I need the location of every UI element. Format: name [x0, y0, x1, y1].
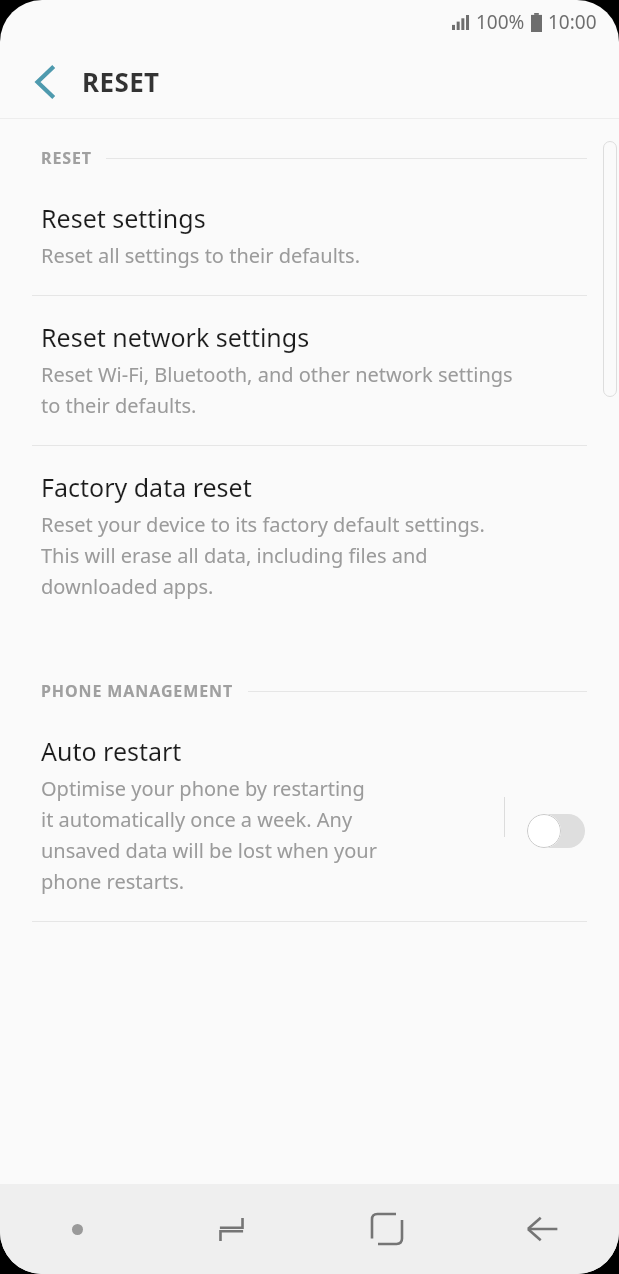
staticText: 10:00 — [548, 9, 597, 35]
button[interactable]: Home — [309, 1184, 464, 1274]
button[interactable]: Auto restart toggle — [527, 809, 591, 853]
staticText: Reset Wi-Fi, Bluetooth, and other networ… — [41, 361, 513, 388]
button[interactable]: Back — [464, 1184, 619, 1274]
staticText: PHONE MANAGEMENT — [41, 680, 234, 702]
button[interactable]: Reset settings — [0, 177, 619, 295]
button[interactable]: Auto restart — [0, 710, 619, 921]
staticText: Auto restart — [41, 734, 182, 768]
staticText: This will erase all data, including file… — [41, 542, 428, 569]
staticText: RESET — [41, 147, 92, 169]
staticText: Reset settings — [41, 201, 206, 235]
staticText: to their defaults. — [41, 392, 197, 419]
staticText: Optimise your phone by restarting — [41, 775, 365, 802]
staticText: Reset network settings — [41, 320, 310, 354]
staticText: unsaved data will be lost when your — [41, 837, 377, 864]
staticText: phone restarts. — [41, 868, 185, 895]
staticText: Factory data reset — [41, 470, 252, 504]
button[interactable]: Factory data reset — [0, 446, 619, 626]
staticText: downloaded apps. — [41, 573, 214, 600]
staticText: Reset all settings to their defaults. — [41, 242, 360, 269]
button[interactable]: Back — [18, 55, 72, 109]
button[interactable]: Reset network settings — [0, 296, 619, 445]
staticText: RESET — [82, 64, 160, 99]
staticText: Reset your device to its factory default… — [41, 511, 485, 538]
button[interactable]: Recents — [154, 1184, 309, 1274]
staticText: 100% — [476, 9, 525, 35]
staticText: it automatically once a week. Any — [41, 806, 353, 833]
